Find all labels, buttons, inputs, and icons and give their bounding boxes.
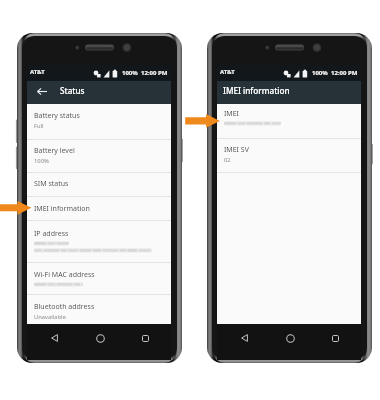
staticText: Bluetooth address (34, 302, 95, 312)
staticText: IMEI (224, 109, 239, 119)
staticText: IMEI information (34, 204, 90, 214)
button[interactable]: Battery level (27, 140, 171, 173)
button[interactable]: Back (46, 330, 62, 346)
button[interactable]: Wi-Fi MAC address (27, 263, 171, 295)
button[interactable]: SIM status (27, 173, 171, 197)
button[interactable]: Home (282, 330, 298, 346)
button[interactable]: Back (27, 81, 50, 104)
button[interactable]: Battery status (27, 104, 171, 140)
button[interactable]: IP address (27, 221, 171, 263)
button[interactable]: Recent apps (137, 330, 153, 346)
staticText: IP address (34, 229, 69, 239)
button[interactable]: IMEI (217, 104, 361, 139)
staticText: 12:00 PM (331, 69, 358, 77)
staticText: Battery level (34, 146, 75, 156)
button[interactable]: Recent apps (327, 330, 343, 346)
button[interactable]: Back (236, 330, 252, 346)
button[interactable]: IMEI SV (217, 139, 361, 173)
staticText: AT&T (30, 68, 45, 76)
staticText: Full (34, 122, 44, 130)
staticText: Battery status (34, 111, 80, 121)
staticText: 100% (34, 157, 49, 165)
button[interactable]: Home (92, 330, 108, 346)
staticText: 100% (312, 69, 328, 77)
staticText: Status (60, 85, 85, 96)
staticText: 02 (224, 156, 231, 164)
button[interactable]: Bluetooth address (27, 295, 171, 326)
staticText: Wi-Fi MAC address (34, 270, 95, 280)
staticText: 12:00 PM (141, 69, 168, 77)
button[interactable]: IMEI information (27, 197, 171, 221)
staticText: 100% (122, 69, 138, 77)
staticText: IMEI information (223, 85, 290, 96)
staticText: IMEI SV (224, 145, 249, 155)
staticText: Unavailable (34, 313, 66, 321)
staticText: AT&T (220, 68, 235, 76)
staticText: SIM status (34, 179, 69, 189)
